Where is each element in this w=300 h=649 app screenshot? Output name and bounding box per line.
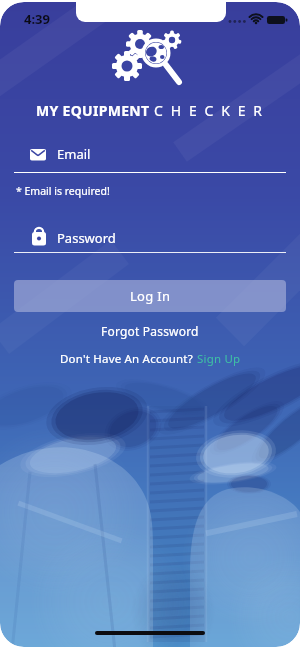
staticText: Log In [130,287,171,305]
staticText: Sign Up [197,351,241,367]
button[interactable]: Password [14,224,286,252]
staticText: Forgot Password [101,323,199,339]
button[interactable]: Log In [14,280,286,312]
staticText: MY EQUIPMENT [36,101,154,120]
button[interactable]: Sign Up [197,351,241,367]
staticText: 4:39 [24,10,50,28]
staticText: Don't Have An Account? [60,351,197,367]
button[interactable]: Email [14,140,286,173]
staticText: * Email is required! [16,184,110,198]
button[interactable]: Forgot Password [101,323,199,339]
staticText: Email [57,145,91,163]
staticText: C H E C K E R [154,101,265,120]
staticText: Password [57,229,116,247]
